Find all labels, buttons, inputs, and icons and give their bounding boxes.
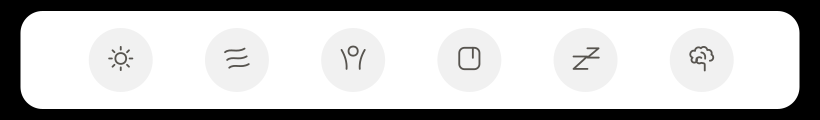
button[interactable]: Mindfulness bbox=[670, 28, 734, 92]
button[interactable]: Brightness bbox=[89, 28, 153, 92]
button[interactable]: Sleep bbox=[553, 28, 617, 92]
button[interactable]: Stretch bbox=[321, 28, 385, 92]
button[interactable]: Journal bbox=[437, 28, 501, 92]
button[interactable]: Hydration bbox=[205, 28, 269, 92]
